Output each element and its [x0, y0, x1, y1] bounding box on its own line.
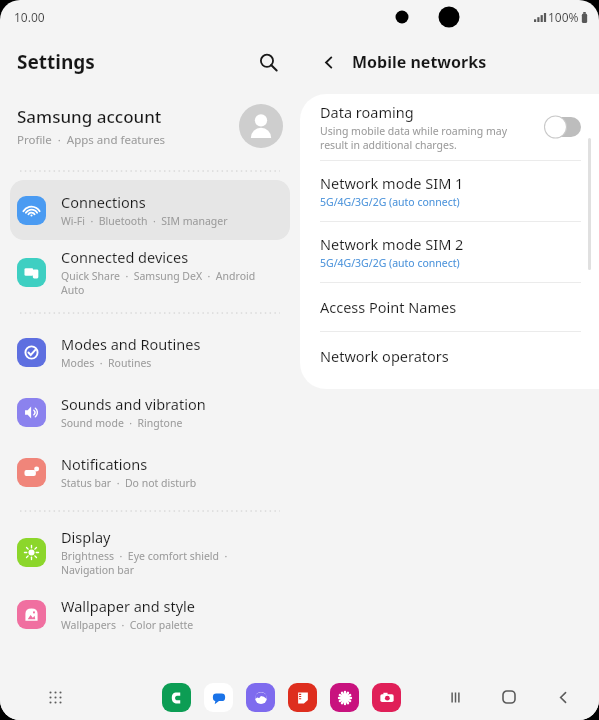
staticText: Wi-Fi · Bluetooth · SIM manager — [61, 214, 228, 228]
button[interactable]: Home — [495, 683, 523, 711]
button[interactable]: Back — [549, 683, 577, 711]
staticText: 5G/4G/3G/2G (auto connect) — [320, 195, 460, 209]
button[interactable]: Data roaming — [300, 94, 599, 160]
button[interactable]: Samsung account — [0, 90, 300, 162]
button[interactable]: Search — [250, 44, 286, 80]
button[interactable]: Network mode SIM 2 — [300, 222, 599, 282]
staticText: Quick Share · Samsung DeX · Android Auto — [61, 269, 256, 297]
button[interactable]: Network mode SIM 1 — [300, 161, 599, 221]
staticText: Modes · Routines — [61, 356, 152, 370]
staticText: Settings — [17, 49, 95, 75]
staticText: Mobile networks — [352, 51, 487, 73]
staticText: Connections — [61, 192, 146, 212]
staticText: Status bar · Do not disturb — [61, 476, 197, 490]
button[interactable]: camera — [372, 683, 401, 712]
staticText: Modes and Routines — [61, 334, 201, 354]
button[interactable]: flower — [330, 683, 359, 712]
button[interactable]: Notifications — [10, 442, 290, 502]
staticText: Data roaming — [320, 102, 414, 122]
button[interactable]: Access Point Names — [300, 283, 599, 331]
staticText: 100% — [548, 9, 579, 25]
staticText: 5G/4G/3G/2G (auto connect) — [320, 256, 460, 270]
button[interactable]: Connected devices — [10, 240, 290, 304]
button[interactable]: Data roaming — [541, 114, 583, 140]
staticText: Sounds and vibration — [61, 394, 206, 414]
button[interactable]: msg — [204, 683, 233, 712]
button[interactable]: Connections — [10, 180, 290, 240]
button[interactable]: Wallpaper and style — [10, 584, 290, 644]
button[interactable]: notes — [288, 683, 317, 712]
staticText: Profile · Apps and features — [17, 132, 166, 148]
button[interactable]: Display — [10, 520, 290, 584]
button[interactable]: Back — [312, 45, 346, 79]
staticText: Network mode SIM 2 — [320, 234, 464, 254]
staticText: Connected devices — [61, 247, 189, 267]
staticText: Network mode SIM 1 — [320, 173, 464, 193]
button[interactable]: browser — [246, 683, 275, 712]
staticText: Brightness · Eye comfort shield · Naviga… — [61, 549, 228, 577]
staticText: Notifications — [61, 454, 148, 474]
staticText: Wallpaper and style — [61, 596, 195, 616]
staticText: Wallpapers · Color palette — [61, 618, 194, 632]
button[interactable]: phone — [162, 683, 191, 712]
staticText: 10.00 — [14, 9, 45, 25]
button[interactable]: Apps — [40, 682, 70, 712]
button[interactable]: Modes and Routines — [10, 322, 290, 382]
staticText: Access Point Names — [320, 297, 457, 317]
staticText: Network operators — [320, 346, 449, 366]
button[interactable]: Recents — [441, 683, 469, 711]
button[interactable]: Sounds and vibration — [10, 382, 290, 442]
staticText: Sound mode · Ringtone — [61, 416, 183, 430]
staticText: Using mobile data while roaming may resu… — [320, 124, 507, 152]
staticText: Samsung account — [17, 105, 162, 128]
button[interactable]: Network operators — [300, 332, 599, 380]
staticText: Display — [61, 527, 111, 547]
